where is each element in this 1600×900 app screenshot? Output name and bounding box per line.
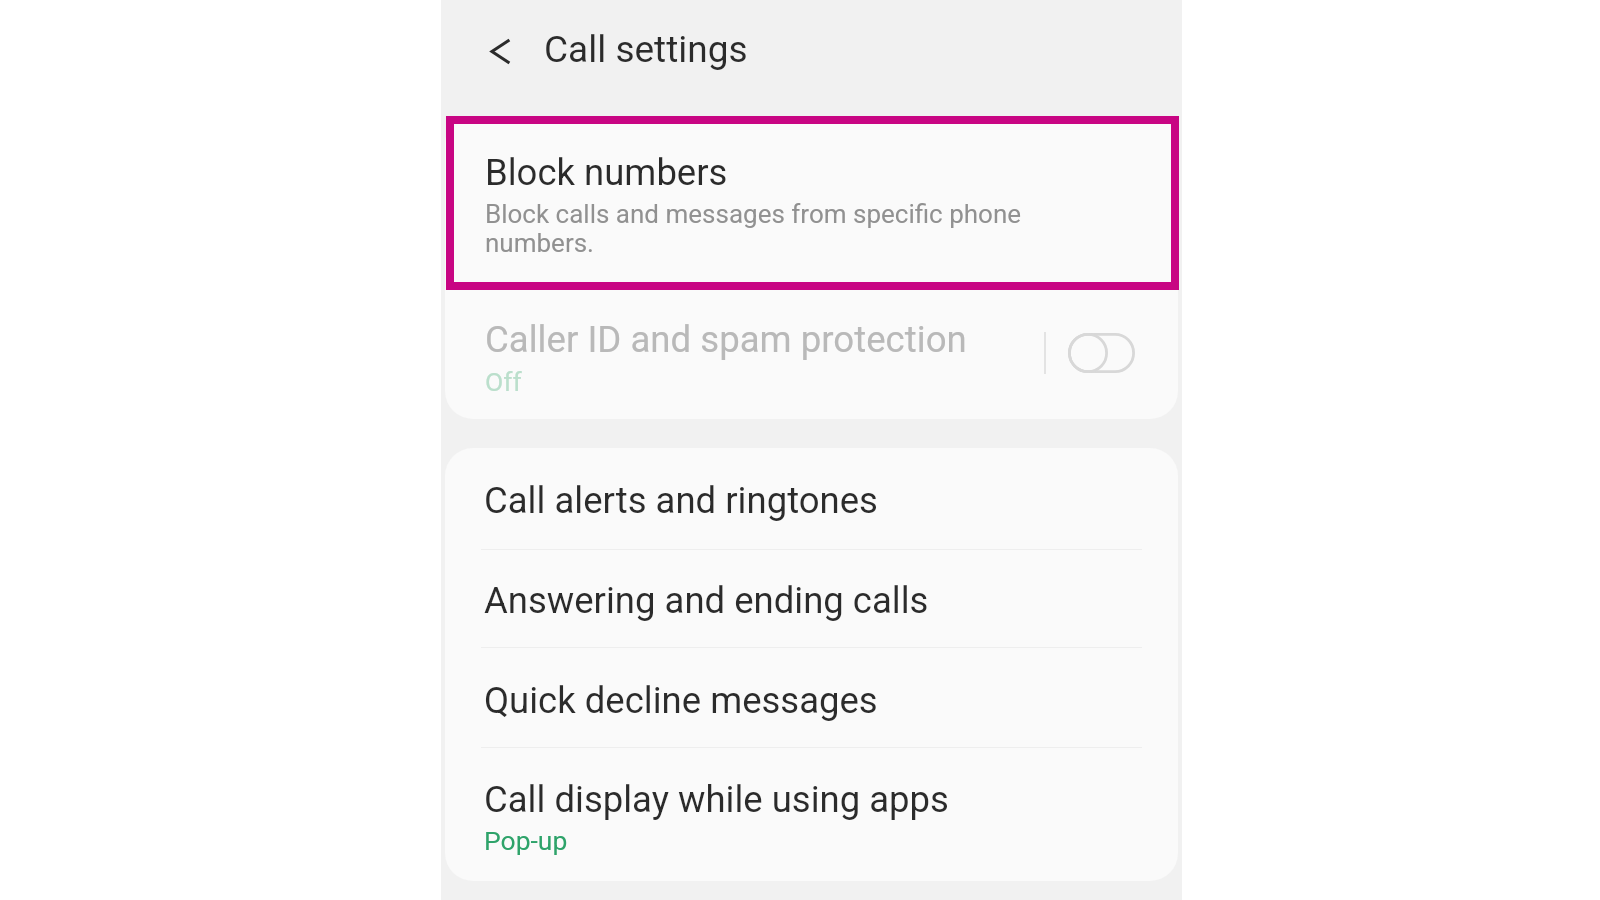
button[interactable]: Caller ID and spam protection, off [1068, 333, 1135, 373]
staticText: Pop-up [484, 825, 568, 856]
staticText: Block calls and messages from specific p… [485, 199, 1085, 259]
staticText: Call alerts and ringtones [484, 479, 878, 522]
button[interactable]: Quick decline messages [445, 648, 1178, 747]
staticText: Call display while using apps [484, 778, 949, 821]
button[interactable]: Answering and ending calls [445, 550, 1178, 647]
button[interactable]: Call display while using apps [445, 748, 1178, 881]
staticText: Call settings [544, 28, 748, 71]
staticText: Answering and ending calls [484, 579, 929, 622]
button[interactable]: Navigate back [478, 27, 526, 75]
button[interactable]: Block numbers [445, 116, 1178, 289]
staticText: Quick decline messages [484, 679, 878, 722]
staticText: Off [485, 366, 522, 397]
staticText: Caller ID and spam protection [485, 318, 967, 361]
button[interactable]: Call alerts and ringtones [445, 448, 1178, 549]
staticText: Block numbers [485, 151, 728, 194]
button[interactable]: Caller ID and spam protection [445, 289, 1178, 419]
